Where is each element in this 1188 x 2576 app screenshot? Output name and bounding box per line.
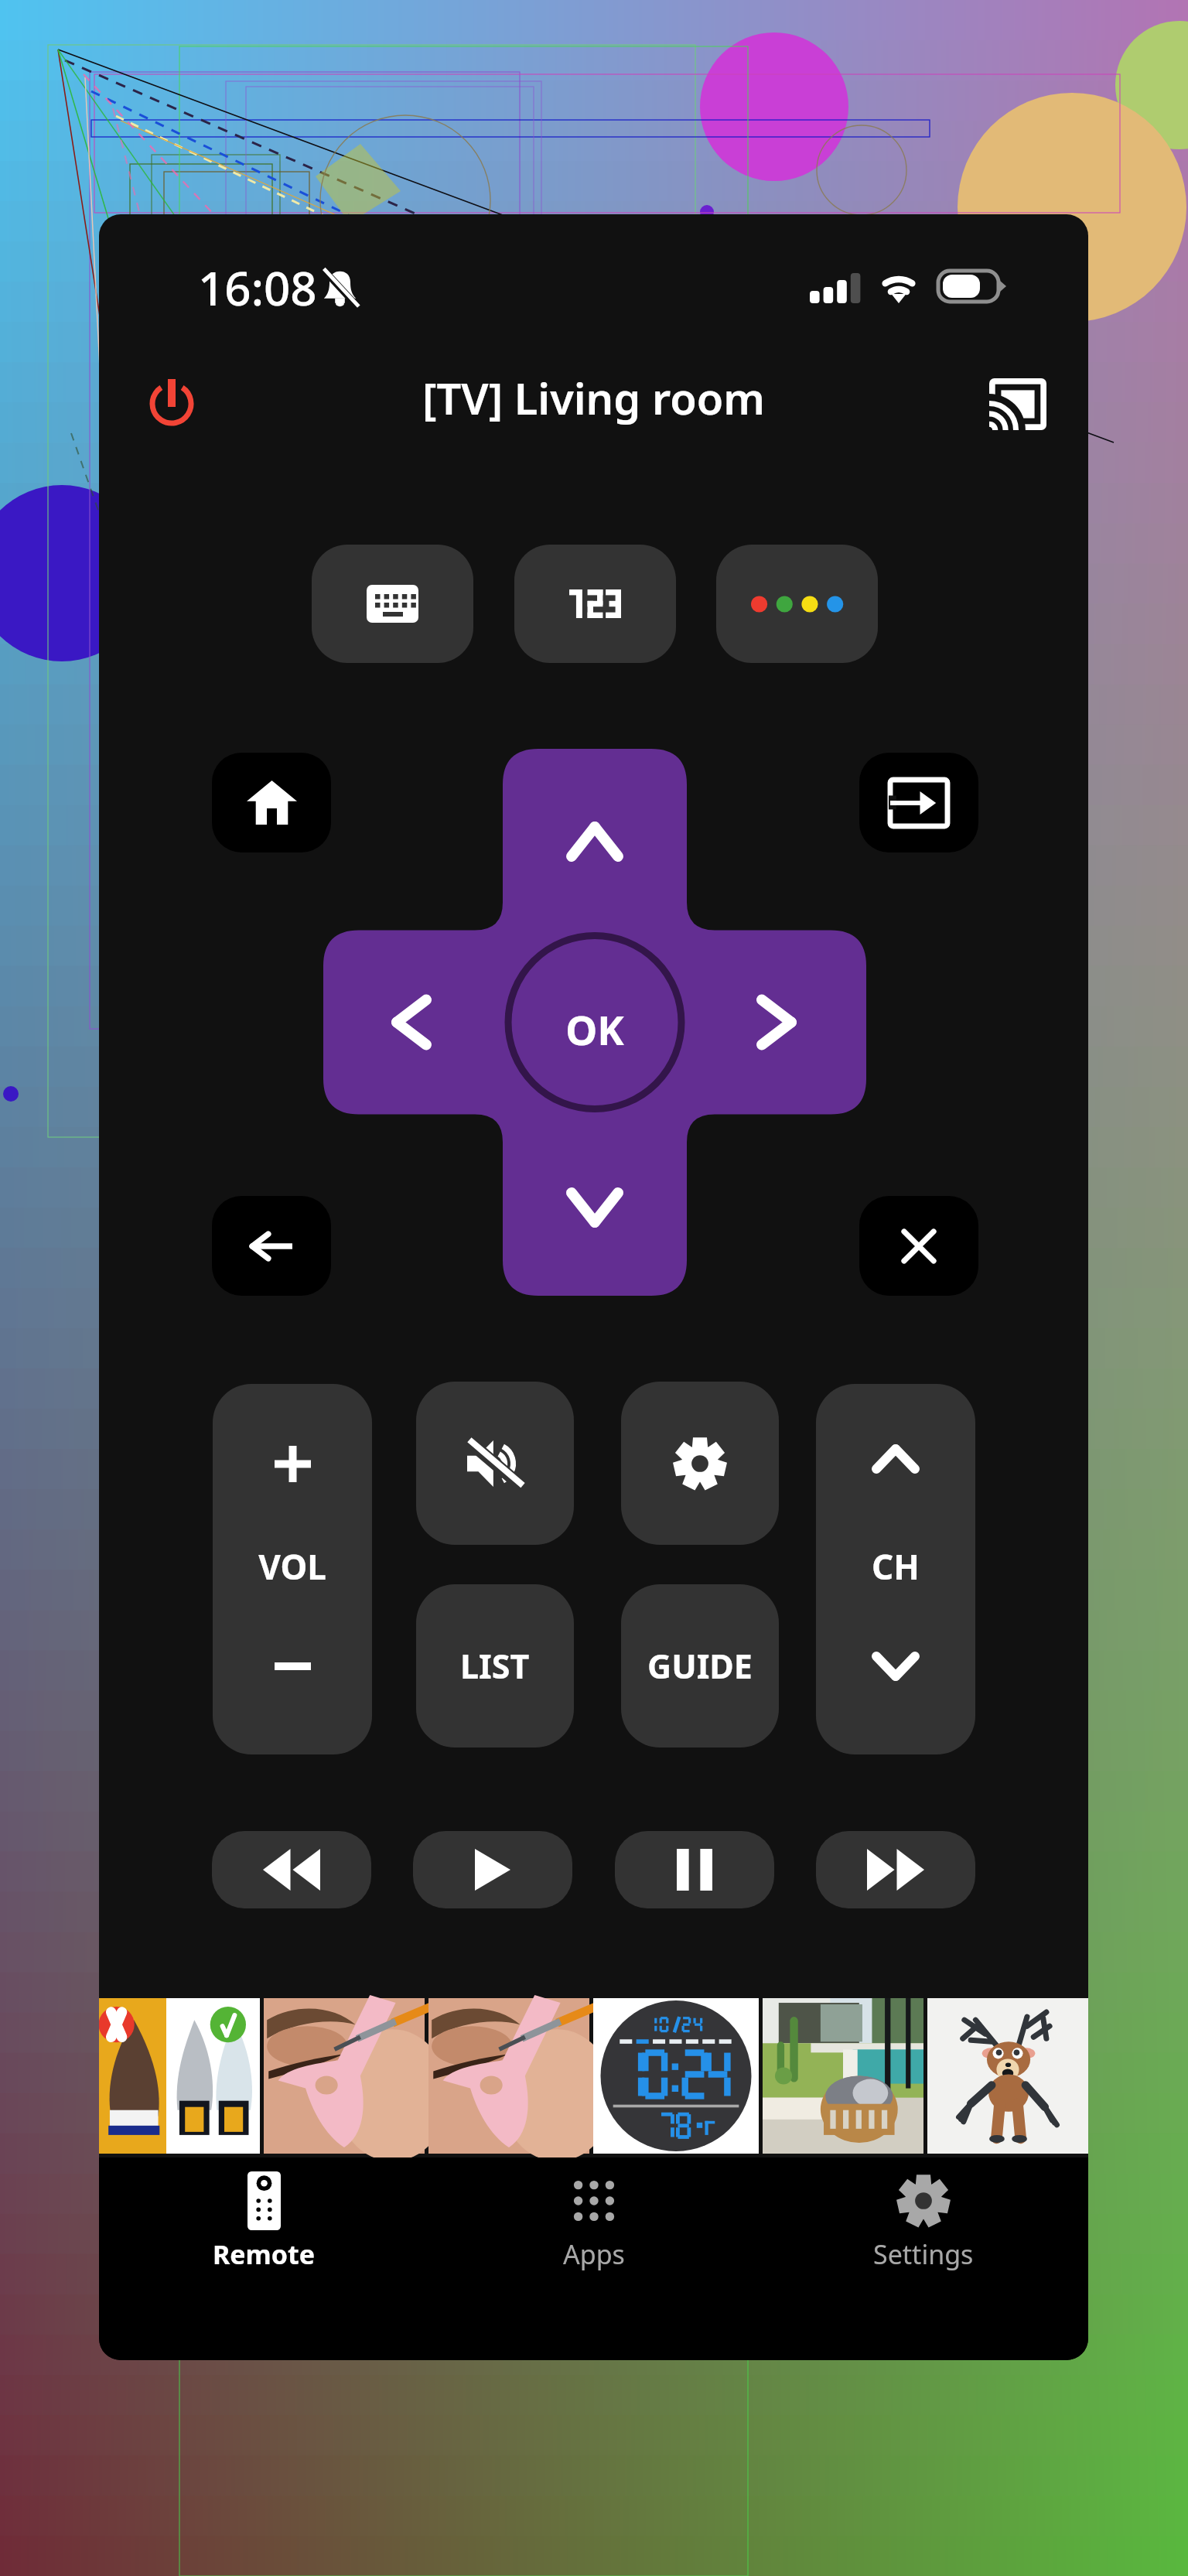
button[interactable]: Settings [621,1382,779,1545]
staticText: VOL [213,1543,372,1590]
staticText: OK [323,1002,866,1057]
button[interactable]: Back [212,1196,331,1296]
button[interactable]: Keyboard [312,545,473,663]
button[interactable]: Pause [615,1831,774,1908]
button[interactable]: Close [859,1196,978,1296]
button[interactable]: Settings [759,2164,1088,2277]
button[interactable]: Home [212,753,331,852]
button[interactable]: OK [509,849,682,1022]
button[interactable]: Power [124,354,220,449]
button[interactable]: Volume [213,1384,372,1754]
button[interactable]: Play [413,1831,572,1908]
staticText: Settings [873,2236,974,2272]
button[interactable]: Color buttons [716,545,878,663]
button[interactable]: Numbers [514,545,676,663]
staticText: LIST [460,1643,530,1689]
button[interactable]: Mute [416,1382,574,1545]
staticText: GUIDE [647,1643,753,1689]
button[interactable]: Fast forward [816,1831,975,1908]
button[interactable]: GUIDE [621,1584,779,1748]
staticText: [TV] Living room [99,368,1088,427]
button[interactable]: Remote [99,2164,429,2277]
button[interactable]: Input source [859,753,978,852]
staticText: Remote [213,2236,316,2272]
button[interactable]: LIST [416,1584,574,1748]
staticText: Apps [563,2236,625,2272]
button[interactable]: Cast [968,354,1068,454]
button[interactable]: Apps [429,2164,759,2277]
button[interactable]: Channel [816,1384,975,1754]
staticText: CH [816,1543,975,1590]
button[interactable]: Rewind [212,1831,371,1908]
staticText: 16:08 [198,256,317,319]
